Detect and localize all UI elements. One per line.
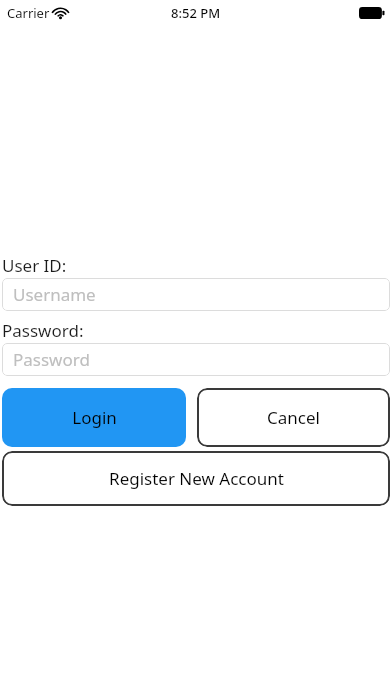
staticText: Carrier — [7, 4, 50, 22]
staticText: Username — [13, 283, 96, 306]
staticText: Cancel — [267, 406, 320, 429]
staticText: Password: — [2, 319, 84, 342]
staticText: Password — [13, 348, 90, 371]
staticText: 8:52 PM — [171, 4, 221, 22]
button[interactable]: Password — [2, 343, 390, 376]
staticText: Login — [72, 406, 117, 429]
staticText: Register New Account — [109, 467, 284, 490]
button[interactable]: Login — [2, 388, 186, 447]
button[interactable]: Username — [2, 278, 390, 311]
button[interactable]: Register New Account — [2, 451, 390, 506]
button[interactable]: Cancel — [197, 388, 390, 447]
staticText: User ID: — [2, 254, 67, 277]
